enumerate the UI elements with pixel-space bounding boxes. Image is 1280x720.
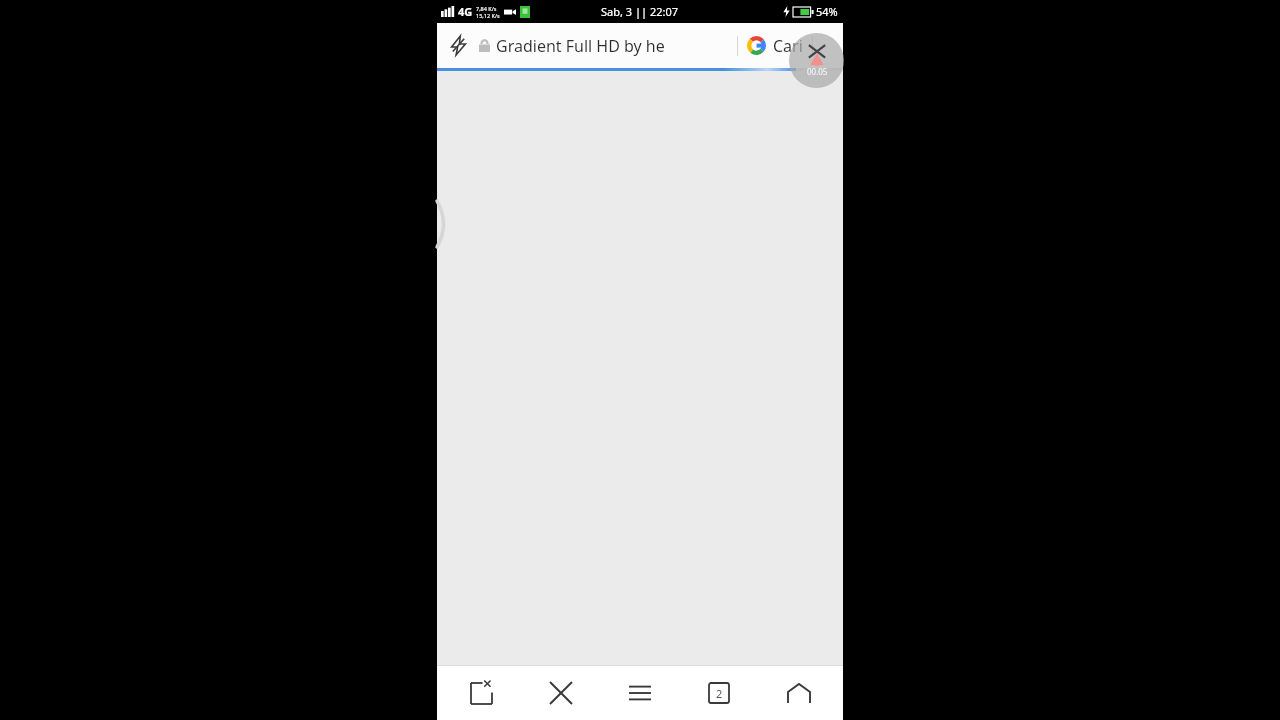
staticText: 2: [716, 686, 723, 701]
staticText: 15,12 K/s: [476, 12, 500, 19]
staticText: 00.05: [807, 66, 828, 77]
staticText: Sab, 3 || 22:07: [601, 4, 679, 19]
staticText: Cari: [773, 35, 803, 57]
button[interactable]: Stop recording: [789, 33, 844, 88]
button[interactable]: Cari: [738, 23, 812, 68]
button[interactable]: Stop loading: [526, 666, 596, 720]
staticText: 7,84 K/s: [476, 5, 497, 12]
button[interactable]: Home: [764, 666, 834, 720]
button[interactable]: Close tab: [446, 666, 516, 720]
staticText: 54%: [816, 4, 838, 19]
staticText: 4G: [458, 4, 473, 19]
button[interactable]: Menu: [605, 666, 675, 720]
button[interactable]: Gradient Full HD by he: [479, 23, 737, 68]
staticText: Gradient Full HD by he: [496, 35, 665, 57]
button[interactable]: Tabs: [684, 666, 754, 720]
button[interactable]: Data saver: [437, 23, 479, 68]
